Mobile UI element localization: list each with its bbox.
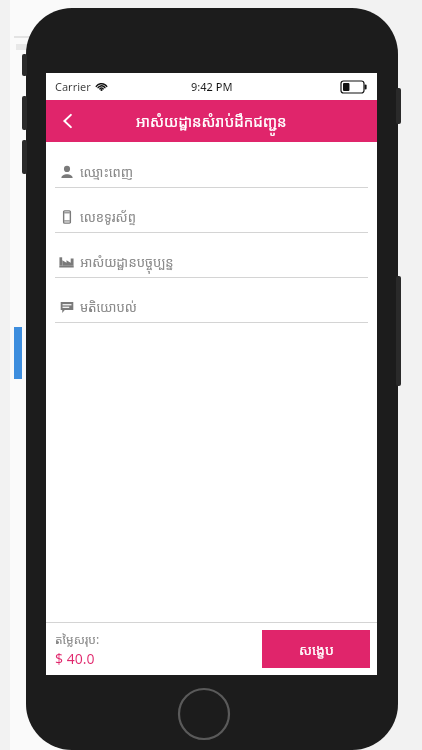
button[interactable]: Back xyxy=(46,100,90,142)
staticText: $ 40.0 xyxy=(55,649,95,668)
staticText: លេខទូរស័ព្ទ xyxy=(80,208,136,226)
staticText: មតិយោបល់ xyxy=(80,298,137,316)
staticText: អាសំយដ្ឋានសំរាប់ដឹកជញ្ជូន xyxy=(136,111,287,131)
button[interactable]: អាសំយដ្ឋានបច្ចុប្បន្ន xyxy=(55,246,368,291)
button[interactable]: លេខទូរស័ព្ទ xyxy=(55,201,368,246)
staticText: Carrier xyxy=(55,79,91,94)
staticText: 9:42 PM xyxy=(191,79,233,94)
button[interactable]: ឈ្មោះពេញ xyxy=(55,156,368,201)
staticText: សង្ខេប xyxy=(299,640,334,659)
staticText: អាសំយដ្ឋានបច្ចុប្បន្ន xyxy=(80,253,174,271)
button[interactable]: មតិយោបល់ xyxy=(55,291,368,336)
staticText: ឈ្មោះពេញ xyxy=(80,163,134,181)
staticText: តម្លៃសរុប: xyxy=(55,631,100,647)
button[interactable]: សង្ខេប xyxy=(262,630,370,668)
